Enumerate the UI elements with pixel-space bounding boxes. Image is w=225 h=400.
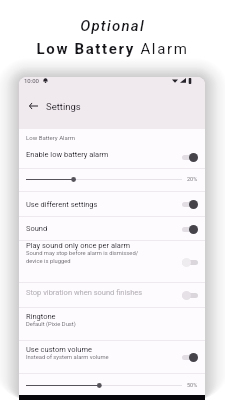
staticText: 50% [187,382,198,388]
staticText: Default (Pixie Dust) [26,321,76,328]
staticText: Low Battery Alarm [26,134,76,141]
staticText: Enable low battery alarm [26,150,109,159]
button[interactable]: Ringtone [19,308,205,340]
button[interactable]: Stop vibration when sound finishes [19,283,205,307]
button[interactable]: Turn on [182,290,198,300]
button[interactable]: Sound [19,217,205,240]
button[interactable]: Turn off [182,352,198,362]
button[interactable]: Turn off [182,199,198,209]
staticText: Stop vibration when sound finishes [26,288,143,297]
staticText: 20% [187,176,198,182]
button[interactable]: Slider [26,381,182,390]
staticText: Use different settings [26,200,98,209]
staticText: Instead of system alarm volume [26,354,109,361]
staticText: Settings [46,101,81,112]
button[interactable]: Enable low battery alarm [19,145,205,168]
button[interactable]: Turn on [182,257,198,267]
staticText: Sound may stop before alarm is dismissed… [26,250,139,264]
staticText: Play sound only once per alarm [26,241,131,250]
button[interactable]: Play sound only once per alarm [19,241,205,282]
button[interactable]: Use different settings [19,192,205,216]
staticText: Optional [0,17,225,35]
staticText: Low Battery Alarm [0,40,225,58]
button[interactable]: Turn off [182,224,198,234]
staticText: 10:00 [24,77,39,84]
staticText: Use custom volume [26,345,92,354]
button[interactable]: Slider [26,175,182,184]
button[interactable]: Turn off [182,152,198,162]
staticText: Ringtone [26,312,56,321]
button[interactable]: Back [26,99,40,113]
staticText: Sound [26,224,48,233]
button[interactable]: Use custom volume [19,341,205,373]
